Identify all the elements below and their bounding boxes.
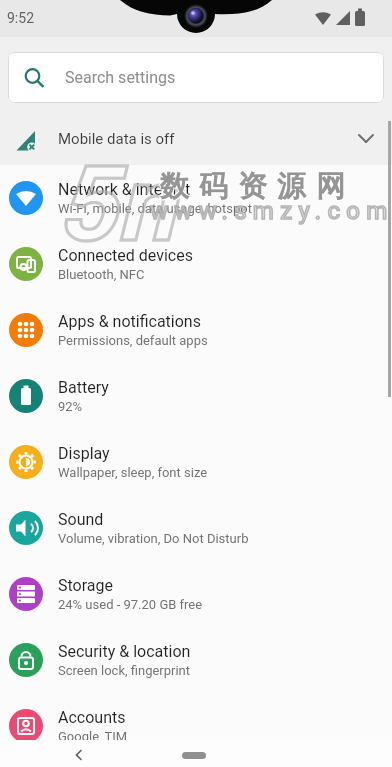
staticText: 数码资源网 bbox=[155, 168, 350, 205]
button[interactable]: Mobile data is off bbox=[0, 113, 392, 165]
staticText: 数码资源网 bbox=[154, 168, 349, 205]
staticText: 数码资源网 bbox=[154, 167, 349, 204]
button[interactable]: Apps & notifications bbox=[0, 297, 392, 363]
staticText: 数码资源网 bbox=[156, 168, 351, 205]
staticText: Accounts bbox=[58, 708, 126, 727]
staticText: Battery bbox=[58, 378, 109, 397]
button[interactable]: Network & internet bbox=[0, 165, 392, 231]
staticText: 9:52 bbox=[7, 10, 34, 26]
button[interactable]: Storage bbox=[0, 561, 392, 627]
button[interactable]: Sound bbox=[0, 495, 392, 561]
staticText: Wi-Fi, mobile, data usage, hotspot bbox=[58, 201, 252, 216]
button[interactable]: Security & location bbox=[0, 627, 392, 693]
staticText: 数码资源网 bbox=[155, 167, 350, 204]
staticText: Storage bbox=[58, 576, 113, 595]
staticText: 5n bbox=[56, 144, 174, 266]
staticText: Bluetooth, NFC bbox=[58, 267, 145, 282]
staticText: 数码资源网 bbox=[156, 169, 351, 206]
button[interactable]: Connected devices bbox=[0, 231, 392, 297]
staticText: Security & location bbox=[58, 642, 191, 661]
staticText: Permissions, default apps bbox=[58, 333, 208, 348]
staticText: Mobile data is off bbox=[58, 130, 175, 148]
button[interactable]: Display bbox=[0, 429, 392, 495]
staticText: Google, TIM bbox=[58, 729, 128, 744]
button[interactable]: Accounts bbox=[0, 693, 392, 759]
staticText: Apps & notifications bbox=[58, 312, 201, 331]
staticText: Wallpaper, sleep, font size bbox=[58, 465, 208, 480]
staticText: Sound bbox=[58, 510, 104, 529]
staticText: 数码资源网 bbox=[156, 167, 351, 204]
staticText: Display bbox=[58, 444, 110, 463]
staticText: Connected devices bbox=[58, 246, 193, 265]
staticText: Search settings bbox=[65, 68, 176, 87]
staticText: 数码资源网 bbox=[155, 169, 350, 206]
staticText: Volume, vibration, Do Not Disturb bbox=[58, 531, 249, 546]
staticText: Screen lock, fingerprint bbox=[58, 663, 191, 678]
staticText: 数码资源网 bbox=[154, 169, 349, 206]
staticText: Network & internet bbox=[58, 180, 191, 199]
button[interactable]: Search settings bbox=[8, 52, 384, 103]
button[interactable]: Battery bbox=[0, 363, 392, 429]
staticText: 92% bbox=[58, 399, 83, 414]
staticText: www.smzy.com bbox=[150, 197, 392, 225]
staticText: 24% used - 97.20 GB free bbox=[58, 597, 203, 612]
staticText: www.smzy.com bbox=[150, 197, 392, 225]
button[interactable] bbox=[0, 740, 392, 767]
